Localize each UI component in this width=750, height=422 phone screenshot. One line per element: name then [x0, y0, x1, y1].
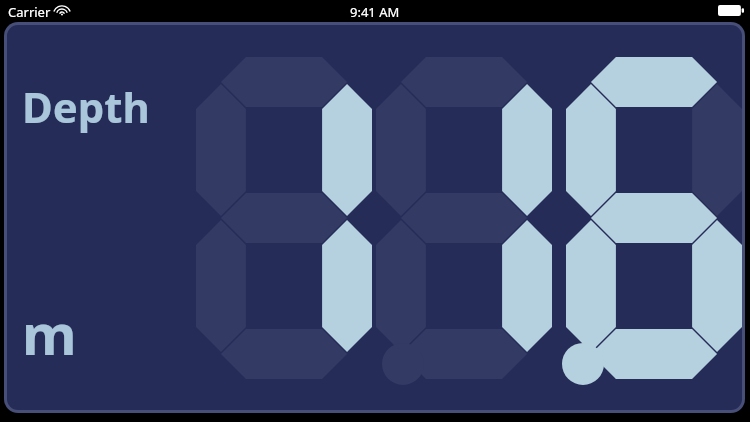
- staticText: m: [22, 295, 77, 371]
- staticText: 9:41 AM: [350, 3, 400, 21]
- staticText: Depth: [22, 78, 150, 135]
- button[interactable]: Depth gauge 11.6 metres: [0, 0, 750, 422]
- staticText: Carrier: [8, 3, 51, 21]
